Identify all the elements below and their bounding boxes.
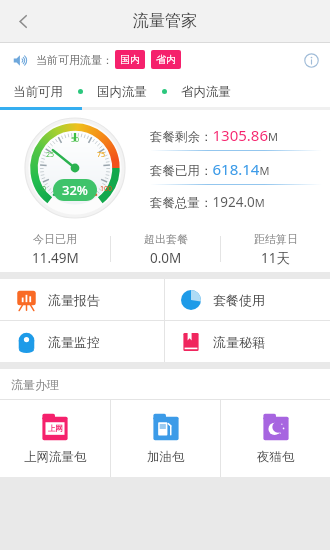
staticText: 流量报告	[48, 292, 100, 308]
button[interactable]: 省内流量	[181, 84, 231, 100]
staticText: 国内流量	[97, 84, 147, 100]
button[interactable]: 流量监控	[0, 321, 164, 362]
staticText: 流量秘籍	[213, 334, 265, 350]
staticText: 75	[97, 150, 106, 160]
staticText: 50	[71, 135, 80, 145]
staticText: 套餐总量：1924.0M	[150, 193, 265, 211]
button[interactable]: 国内流量	[97, 84, 147, 100]
staticText: 省内	[156, 53, 176, 66]
button[interactable]: 上网	[0, 400, 110, 477]
staticText: 32%	[62, 181, 88, 199]
staticText: 套餐使用	[213, 292, 265, 308]
staticText: 0.0M	[150, 249, 182, 267]
staticText: 当前可用流量：	[36, 53, 113, 67]
staticText: 流量监控	[48, 334, 100, 350]
button[interactable]: 省内	[151, 50, 181, 69]
button[interactable]: 夜猫包	[221, 400, 330, 477]
button[interactable]: 国内	[115, 50, 145, 69]
staticText: 套餐已用：618.14M	[150, 159, 270, 179]
button[interactable]: Announcement	[10, 50, 30, 70]
staticText: 国内	[120, 53, 140, 66]
button[interactable]: 流量秘籍	[165, 321, 330, 362]
button[interactable]: 距结算日	[221, 226, 330, 272]
staticText: 11天	[261, 249, 290, 267]
button[interactable]: 今日已用	[0, 226, 110, 272]
staticText: 加油包	[147, 449, 185, 465]
button[interactable]: 流量报告	[0, 279, 164, 320]
button[interactable]: Info	[300, 49, 322, 71]
staticText: 超出套餐	[144, 232, 188, 246]
staticText: 流量管家	[133, 11, 197, 31]
staticText: 流量办理	[11, 377, 59, 392]
staticText: 今日已用	[33, 232, 77, 246]
button[interactable]: 当前可用	[13, 84, 63, 100]
staticText: 上网流量包	[24, 449, 87, 465]
staticText: 夜猫包	[257, 449, 295, 465]
button[interactable]: 套餐使用	[165, 279, 330, 320]
staticText: 25	[46, 150, 55, 160]
button[interactable]: 加油包	[111, 400, 220, 477]
staticText: 11.49M	[32, 249, 79, 267]
staticText: 省内流量	[181, 84, 231, 100]
staticText: 套餐剩余：1305.86M	[150, 125, 278, 145]
staticText: 上网	[48, 424, 63, 433]
staticText: 当前可用	[13, 84, 63, 100]
staticText: 100	[100, 184, 113, 194]
staticText: 距结算日	[254, 232, 298, 246]
staticText: 0	[42, 184, 47, 194]
button[interactable]: Back	[0, 0, 46, 42]
button[interactable]: 超出套餐	[111, 226, 220, 272]
